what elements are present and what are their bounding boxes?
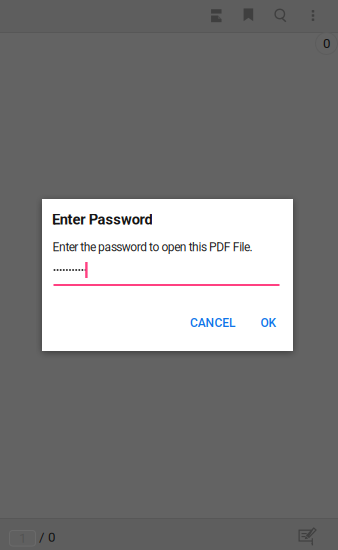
- button[interactable]: Bookmarks: [232, 0, 264, 31]
- staticText: OK: [261, 316, 276, 330]
- button[interactable]: Page number: [9, 530, 35, 546]
- staticText: 0: [323, 36, 330, 51]
- button[interactable]: Annotate: [293, 522, 323, 550]
- button[interactable]: More options: [297, 0, 329, 31]
- button[interactable]: OK: [249, 308, 287, 338]
- button[interactable]: View mode: [200, 0, 232, 32]
- staticText: 1: [19, 530, 26, 546]
- staticText: Enter Password: [52, 211, 152, 228]
- button[interactable]: Search: [265, 0, 297, 32]
- staticText: Enter the password to open this PDF File…: [52, 240, 252, 254]
- button[interactable]: CANCEL: [181, 308, 243, 338]
- staticText: CANCEL: [190, 316, 235, 330]
- staticText: / 0: [39, 529, 55, 545]
